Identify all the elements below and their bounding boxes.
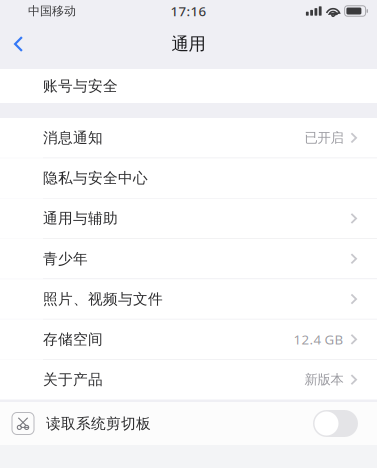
button[interactable]: 照片、视频与文件	[0, 279, 377, 319]
button[interactable]: 账号与安全	[0, 69, 377, 103]
staticText: 隐私与安全中心	[43, 169, 148, 187]
staticText: 新版本	[304, 371, 343, 388]
staticText: 关于产品	[43, 371, 103, 389]
button[interactable]: 关于产品	[0, 360, 377, 399]
button[interactable]: 消息通知	[0, 118, 377, 158]
staticText: 通用与辅助	[43, 209, 118, 227]
staticText: 账号与安全	[43, 77, 118, 95]
staticText: 存储空间	[43, 330, 103, 348]
staticText: 照片、视频与文件	[43, 290, 163, 308]
button[interactable]: 通用与辅助	[0, 199, 377, 238]
button[interactable]: 剪切板	[12, 412, 34, 434]
staticText: 青少年	[43, 250, 88, 268]
staticText: 17:16	[170, 2, 206, 20]
staticText: 已开启	[304, 130, 343, 146]
staticText: 读取系统剪切板	[46, 414, 151, 432]
staticText: 消息通知	[43, 129, 103, 147]
button[interactable]: 青少年	[0, 239, 377, 279]
button[interactable]: 返回	[0, 28, 37, 60]
button[interactable]: 存储空间	[0, 319, 377, 359]
staticText: 中国移动	[28, 4, 76, 18]
button[interactable]: 读取系统剪切板开关	[313, 410, 358, 437]
staticText: 通用	[171, 33, 205, 55]
button[interactable]: 隐私与安全中心	[0, 158, 377, 198]
staticText: 12.4 GB	[293, 330, 343, 348]
